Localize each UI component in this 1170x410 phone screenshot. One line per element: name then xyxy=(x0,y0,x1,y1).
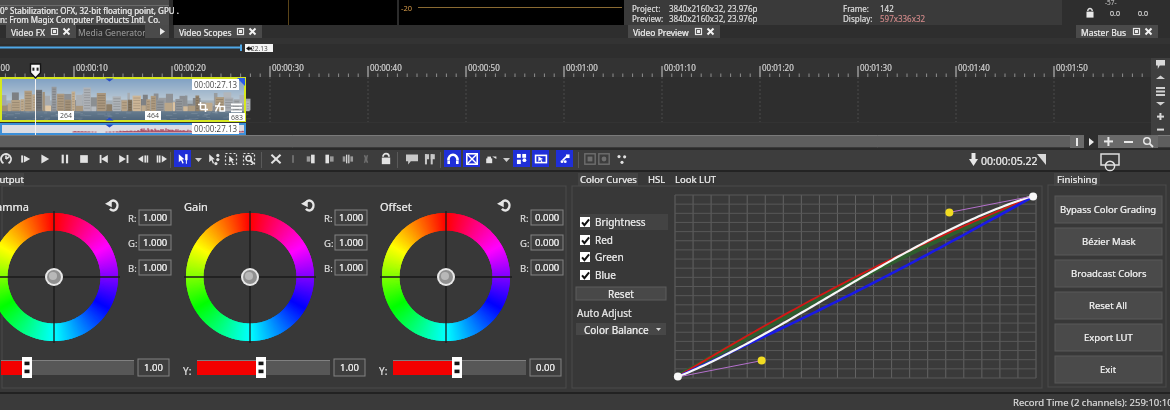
button[interactable]: Scroll down xyxy=(1152,97,1169,110)
button[interactable]: Zoom out xyxy=(1152,123,1169,135)
button[interactable]: 0.000 xyxy=(531,235,563,250)
staticText: Y: xyxy=(379,364,388,378)
button[interactable]: Pause xyxy=(56,150,73,167)
button[interactable]: 1.000 xyxy=(335,235,367,250)
button[interactable]: Edit details xyxy=(581,150,598,167)
button[interactable]: 0.000 xyxy=(531,210,563,225)
button[interactable]: Region xyxy=(421,150,438,167)
button[interactable]: Reset Offset xyxy=(496,198,512,212)
button[interactable]: Scroll right xyxy=(1084,135,1098,148)
button[interactable]: Split xyxy=(339,150,356,167)
staticText: 1.00 xyxy=(340,361,359,374)
button[interactable]: Reset Gain xyxy=(300,198,316,212)
button[interactable] xyxy=(197,360,330,375)
staticText: 1.000 xyxy=(339,211,364,224)
button[interactable]: Auto ripple xyxy=(513,150,530,167)
staticText: 1.000 xyxy=(339,261,364,274)
button[interactable]: Video FX xyxy=(6,25,76,38)
button[interactable]: Exit xyxy=(1055,356,1162,383)
button[interactable]: Brightness xyxy=(580,214,668,230)
button[interactable]: Zoom in xyxy=(1152,110,1169,123)
button[interactable]: Reset All xyxy=(1055,292,1162,319)
button[interactable]: Previous frame xyxy=(134,150,151,167)
button[interactable]: 0.000 xyxy=(531,260,563,275)
button[interactable]: Edit tool xyxy=(174,150,191,167)
button[interactable]: HSL xyxy=(645,173,669,186)
button[interactable]: Broadcast Colors xyxy=(1055,260,1162,287)
button[interactable]: Video Scopes xyxy=(174,25,262,38)
button[interactable]: Color wheel xyxy=(380,211,512,343)
button[interactable]: Master Bus xyxy=(1076,25,1158,38)
button[interactable]: More options xyxy=(192,151,204,169)
button[interactable]: Zoom tool xyxy=(1138,135,1158,148)
button[interactable]: 1.000 xyxy=(139,260,171,275)
staticText: 00:00:00 xyxy=(0,62,10,73)
button[interactable]: 1.000 xyxy=(139,235,171,250)
button[interactable]: Red xyxy=(580,232,614,248)
button[interactable]: Reset Gamma xyxy=(104,198,120,212)
button[interactable]: Green xyxy=(580,249,624,265)
button[interactable]: Next frame xyxy=(153,150,170,167)
button[interactable]: Play from start xyxy=(17,150,34,167)
button[interactable]: Loop xyxy=(0,150,14,167)
staticText: 1.000 xyxy=(143,261,168,274)
button[interactable]: Bézier Mask xyxy=(1055,228,1162,255)
button[interactable]: Selection edit xyxy=(205,150,222,167)
other: Cursor position xyxy=(969,153,978,166)
button[interactable]: Look LUT xyxy=(674,173,718,186)
button[interactable]: 1.000 xyxy=(139,210,171,225)
button[interactable]: Export LUT xyxy=(1055,324,1162,351)
staticText: 0.000 xyxy=(535,211,560,224)
button[interactable]: Stop xyxy=(75,150,92,167)
button[interactable]: 1.00 xyxy=(138,359,169,376)
button[interactable]: Zoom in xyxy=(1098,135,1118,148)
button[interactable]: Go to end xyxy=(114,150,131,167)
button[interactable]: Video Preview xyxy=(628,25,720,38)
button[interactable]: Go to start xyxy=(95,150,112,167)
staticText: G: xyxy=(324,237,334,250)
staticText: 0.00 xyxy=(536,361,555,374)
button[interactable]: Reset xyxy=(576,287,666,300)
button[interactable]: Trim right xyxy=(321,150,338,167)
button[interactable]: Color Curves xyxy=(578,173,638,186)
button[interactable]: Color Balance xyxy=(576,323,666,335)
button[interactable]: Track list xyxy=(1152,84,1169,97)
button[interactable]: Finishing xyxy=(1054,173,1100,186)
button[interactable]: Marker xyxy=(1152,58,1169,71)
button[interactable]: Ignore grouping xyxy=(556,150,573,167)
button[interactable]: Marker xyxy=(403,150,420,167)
button[interactable]: Color wheel xyxy=(0,211,120,343)
button[interactable]: 1.00 xyxy=(334,359,365,376)
button[interactable]: Blue xyxy=(580,267,616,283)
button[interactable]: Zoom tool xyxy=(240,150,257,167)
button[interactable]: Envelope tool xyxy=(222,150,239,167)
button[interactable]: 1.000 xyxy=(335,260,367,275)
button[interactable]: Auto crossfade xyxy=(463,150,480,167)
button[interactable]: Trim start xyxy=(284,150,301,167)
button[interactable]: Output xyxy=(0,173,24,186)
button[interactable]: Cut xyxy=(267,150,284,167)
staticText: Auto Adjust xyxy=(577,306,632,320)
button[interactable] xyxy=(393,360,526,375)
button[interactable]: Media Generators xyxy=(78,27,150,39)
staticText: Reset All xyxy=(1089,299,1128,312)
button[interactable]: Lock xyxy=(377,150,394,167)
button[interactable]: Crossfade xyxy=(357,150,374,167)
button[interactable]: Zoom out xyxy=(1118,135,1138,148)
button[interactable]: 0.00 xyxy=(530,359,561,376)
button[interactable] xyxy=(1,360,134,375)
button[interactable]: 1.000 xyxy=(335,210,367,225)
button[interactable]: Bypass Color Grading xyxy=(1055,196,1162,223)
button[interactable]: Next tab xyxy=(156,25,169,38)
button[interactable]: Trimmer xyxy=(595,150,612,167)
staticText: 00:01:10 xyxy=(664,62,696,73)
button[interactable]: Trim left xyxy=(303,150,320,167)
button[interactable]: Automation settings xyxy=(482,150,499,167)
button[interactable]: Snapping xyxy=(444,150,461,167)
button[interactable]: Plugins xyxy=(613,150,630,167)
button[interactable]: Color wheel xyxy=(184,211,316,343)
button[interactable]: Play xyxy=(36,150,53,167)
button[interactable]: Lock envelopes xyxy=(532,150,549,167)
button[interactable]: Scroll up xyxy=(1152,71,1169,84)
button[interactable]: More options xyxy=(500,151,512,169)
